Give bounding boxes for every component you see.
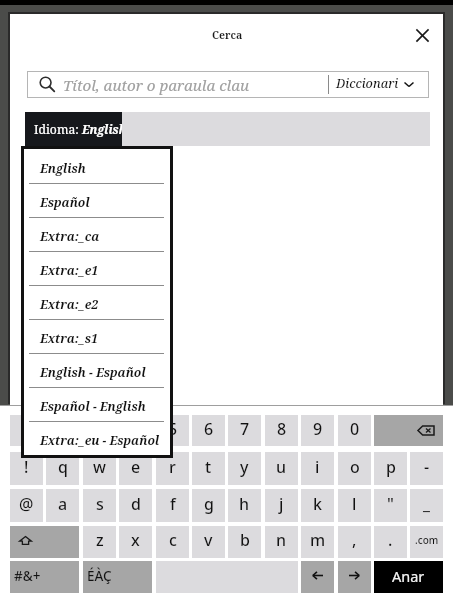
staticText: 4 [131, 418, 141, 440]
staticText: v [204, 529, 213, 551]
staticText: y [240, 456, 249, 478]
button[interactable]: 8 [265, 415, 298, 446]
button[interactable]: .com [410, 526, 443, 558]
staticText: English [40, 160, 86, 177]
button[interactable]: - [410, 452, 443, 485]
staticText: f [170, 493, 176, 515]
button[interactable]: Extra:_s1 [23, 320, 171, 354]
button[interactable]: @ [10, 489, 43, 522]
button[interactable]: ÉÀÇ [83, 561, 152, 593]
staticText: 7 [240, 418, 250, 440]
button[interactable]: Anar [374, 561, 443, 593]
button[interactable]: u [265, 452, 298, 485]
button[interactable]: ! [10, 452, 43, 485]
staticText: 6 [204, 418, 214, 440]
button[interactable]: y [228, 452, 261, 485]
button[interactable]: r [156, 452, 189, 485]
button[interactable]: m [301, 526, 334, 558]
button[interactable]: s [83, 489, 116, 522]
button[interactable]: t [192, 452, 225, 485]
staticText: Diccionari [336, 75, 399, 92]
button[interactable]: . [374, 526, 407, 558]
button[interactable]: x [119, 526, 152, 558]
button[interactable]: b [228, 526, 261, 558]
button[interactable]: Diccionari [331, 71, 428, 96]
button[interactable]: 7 [228, 415, 261, 446]
staticText: b [240, 529, 250, 551]
button[interactable]: o [338, 452, 371, 485]
button[interactable]: Shift [10, 526, 79, 558]
staticText: i [315, 456, 320, 478]
button[interactable]: 1 [10, 415, 43, 446]
button[interactable]: Idioma: [25, 112, 122, 146]
staticText: 3 [95, 418, 105, 440]
button[interactable]: 2 [46, 415, 79, 446]
button[interactable]: Español - English [23, 388, 171, 422]
button[interactable]: _ [410, 489, 443, 522]
button[interactable]: w [83, 452, 116, 485]
button[interactable]: Left [301, 561, 334, 593]
button[interactable]: q [46, 452, 79, 485]
button[interactable]: f [156, 489, 189, 522]
staticText: ! [24, 456, 29, 478]
staticText: ÉÀÇ [87, 567, 112, 585]
staticText: p [386, 456, 396, 478]
button[interactable]: Extra:_ca [23, 218, 171, 252]
staticText: j [279, 493, 284, 515]
button[interactable]: j [265, 489, 298, 522]
button[interactable]: i [301, 452, 334, 485]
staticText: Extra:_ca [40, 228, 100, 245]
button[interactable]: 9 [301, 415, 334, 446]
button[interactable]: Extra:_e1 [23, 252, 171, 286]
button[interactable]: z [83, 526, 116, 558]
staticText: English - Español [40, 364, 146, 381]
button[interactable]: 6 [192, 415, 225, 446]
staticText: l [352, 493, 357, 515]
staticText: n [276, 529, 287, 551]
button[interactable]: 3 [83, 415, 116, 446]
button[interactable]: e [119, 452, 152, 485]
staticText: u [276, 456, 287, 478]
staticText: e [131, 456, 141, 478]
button[interactable]: k [301, 489, 334, 522]
staticText: " [387, 493, 394, 515]
staticText: Extra:_s1 [40, 330, 98, 347]
button[interactable]: English - Español [23, 354, 171, 388]
staticText: a [58, 493, 68, 515]
button[interactable]: Right [338, 561, 371, 593]
button[interactable]: c [156, 526, 189, 558]
button[interactable]: Extra:_eu - Español [23, 422, 171, 456]
button[interactable]: v [192, 526, 225, 558]
button[interactable]: " [374, 489, 407, 522]
button[interactable]: g [192, 489, 225, 522]
staticText: , [352, 529, 357, 551]
staticText: 0 [350, 418, 360, 440]
staticText: t [205, 456, 212, 478]
button[interactable]: Extra:_e2 [23, 286, 171, 320]
staticText: Extra:_e1 [40, 262, 99, 279]
button[interactable]: d [119, 489, 152, 522]
button[interactable]: 5 [156, 415, 189, 446]
staticText: w [93, 456, 106, 478]
button[interactable]: 4 [119, 415, 152, 446]
button[interactable]: a [46, 489, 79, 522]
button[interactable]: n [265, 526, 298, 558]
staticText: @ [19, 493, 34, 515]
button[interactable]: English [23, 150, 171, 184]
staticText: s [96, 493, 104, 515]
staticText: r [169, 456, 176, 478]
staticText: k [313, 493, 322, 515]
button[interactable]: Backspace [374, 415, 443, 446]
button[interactable]: l [338, 489, 371, 522]
staticText: Extra:_e2 [40, 296, 99, 313]
button[interactable]: h [228, 489, 261, 522]
button[interactable]: p [374, 452, 407, 485]
staticText: _ [423, 493, 430, 515]
button[interactable]: , [338, 526, 371, 558]
button[interactable]: Close [407, 20, 438, 51]
staticText: Títol, autor o paraula clau [63, 75, 250, 96]
button[interactable]: Español [23, 184, 171, 218]
button[interactable]: 0 [338, 415, 371, 446]
button[interactable]: #&+ [10, 561, 79, 593]
